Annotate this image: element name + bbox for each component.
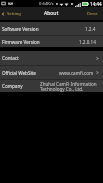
staticText: 0.64K/s: [39, 1, 54, 7]
staticText: Done: [87, 11, 98, 17]
button[interactable]: Official WebSite: [0, 66, 103, 79]
button[interactable]: Firmware Version: [0, 36, 103, 47]
other: Open: [96, 71, 99, 74]
button[interactable]: Done: [83, 7, 103, 20]
staticText: Firmware Version: [2, 39, 40, 45]
staticText: About: [44, 10, 59, 17]
button[interactable]: Setting: [0, 7, 26, 20]
staticText: Official WebSite: [2, 70, 36, 76]
button[interactable]: Company: [0, 80, 103, 92]
button[interactable]: Contact: [0, 51, 103, 65]
button[interactable]: Software Version: [0, 22, 103, 35]
staticText: Setting: [7, 11, 21, 17]
other: Open: [96, 57, 99, 60]
staticText: Company: [2, 83, 23, 89]
staticText: www.camfi.com: [59, 70, 94, 76]
staticText: 1.2.0.14: [79, 39, 96, 45]
staticText: Zhuhai CamFi Information Technology Co.,…: [40, 81, 97, 92]
staticText: 14:44: [90, 1, 102, 7]
staticText: Software Version: [2, 26, 39, 32]
staticText: Contact: [2, 55, 19, 61]
staticText: 1.2.4: [85, 26, 96, 32]
